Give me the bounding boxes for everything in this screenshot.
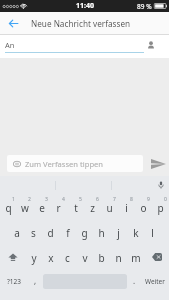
staticText: 9	[147, 196, 150, 203]
button[interactable]: Komma	[28, 269, 43, 294]
staticText: Weiter	[145, 277, 165, 286]
staticText: Neue Nachricht verfassen	[31, 18, 131, 29]
button[interactable]: 7	[101, 194, 118, 219]
staticText: y	[31, 251, 37, 265]
button[interactable]: j	[110, 219, 127, 244]
button[interactable]: 0	[152, 194, 169, 219]
staticText: 7	[113, 196, 116, 203]
button[interactable]: 4	[50, 194, 67, 219]
staticText: a	[14, 226, 20, 240]
button[interactable]: 5	[67, 194, 84, 219]
staticText: 1	[12, 196, 15, 203]
staticText: 5	[79, 196, 82, 203]
button[interactable]: Zum Verfassen tippen	[7, 155, 143, 172]
staticText: b	[98, 251, 105, 265]
button[interactable]: Kontakte	[145, 39, 157, 51]
button[interactable]: f	[59, 219, 76, 244]
staticText: u	[106, 201, 113, 215]
button[interactable]: d	[42, 219, 59, 244]
button[interactable]: 9	[135, 194, 152, 219]
button[interactable]: c	[59, 244, 76, 269]
button[interactable]: Punkt	[127, 269, 141, 294]
staticText: k	[133, 226, 139, 240]
button[interactable]: 1	[0, 194, 16, 219]
button[interactable]: Umschalttaste	[0, 244, 25, 269]
button[interactable]: ?123	[0, 269, 28, 294]
button[interactable]: l	[144, 219, 161, 244]
button[interactable]: y	[25, 244, 42, 269]
staticText: 3	[45, 196, 48, 203]
staticText: l	[151, 226, 154, 240]
staticText: .	[133, 275, 136, 286]
staticText: j	[117, 226, 120, 240]
staticText: f	[66, 226, 70, 240]
staticText: ,	[34, 275, 37, 286]
staticText: w	[21, 201, 29, 215]
button[interactable]: Senden	[145, 155, 169, 172]
button[interactable]: Löschen	[144, 244, 169, 269]
staticText: s	[31, 226, 36, 240]
staticText: p	[157, 201, 164, 215]
staticText: m	[131, 251, 141, 265]
button[interactable]: 6	[84, 194, 101, 219]
staticText: 89 %	[137, 2, 152, 11]
staticText: v	[82, 251, 88, 265]
staticText: t	[74, 201, 78, 215]
staticText: e	[39, 201, 45, 215]
staticText: 4	[62, 196, 65, 203]
button[interactable]: Zurück	[0, 12, 27, 35]
staticText: g	[81, 226, 88, 240]
staticText: 0	[164, 196, 167, 203]
staticText: 6	[96, 196, 99, 203]
staticText: i	[125, 201, 128, 215]
button[interactable]: k	[127, 219, 144, 244]
button[interactable]: a	[8, 219, 25, 244]
staticText: Zum Verfassen tippen	[25, 159, 104, 169]
button[interactable]: g	[76, 219, 93, 244]
button[interactable]: m	[127, 244, 144, 269]
staticText: x	[48, 251, 54, 265]
staticText: n	[115, 251, 122, 265]
button[interactable]: n	[110, 244, 127, 269]
staticText: r	[56, 201, 61, 215]
staticText: o	[140, 201, 147, 215]
staticText: c	[65, 251, 70, 265]
button[interactable]: 2	[16, 194, 33, 219]
staticText: h	[98, 226, 105, 240]
staticText: d	[47, 226, 54, 240]
button[interactable]: Spracheingabe	[152, 176, 169, 194]
button[interactable]: b	[93, 244, 110, 269]
staticText: 2	[28, 196, 31, 203]
button[interactable]: Weiter	[141, 269, 169, 294]
button[interactable]: 8	[118, 194, 135, 219]
staticText: z	[90, 201, 95, 215]
staticText: ?123	[7, 277, 21, 286]
button[interactable]: x	[42, 244, 59, 269]
button[interactable]: 3	[33, 194, 50, 219]
button[interactable]: s	[25, 219, 42, 244]
button[interactable]: v	[76, 244, 93, 269]
staticText: An	[5, 40, 15, 50]
staticText: q	[5, 201, 12, 215]
staticText: 11:40	[76, 1, 94, 11]
button[interactable]: h	[93, 219, 110, 244]
staticText: 8	[130, 196, 133, 203]
